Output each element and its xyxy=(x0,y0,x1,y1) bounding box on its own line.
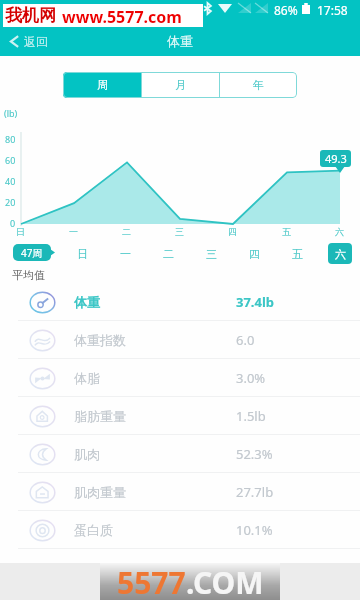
staticText: 27.7lb xyxy=(236,483,274,501)
staticText: 五 xyxy=(282,226,291,237)
staticText: 二 xyxy=(122,226,131,237)
staticText: 肌肉重量 xyxy=(74,484,126,500)
staticText: 六 xyxy=(335,226,344,237)
button[interactable]: 肌肉 xyxy=(0,435,360,473)
button[interactable]: 二 xyxy=(158,243,178,264)
staticText: 5577 xyxy=(117,562,186,599)
staticText: 蛋白质 xyxy=(74,522,113,538)
button[interactable]: 体脂 xyxy=(0,359,360,397)
staticText: 我机网 xyxy=(5,5,56,26)
staticText: 平均值 xyxy=(12,268,45,282)
staticText: 月 xyxy=(175,78,186,92)
staticText: 日 xyxy=(16,226,25,237)
button[interactable]: 周 xyxy=(63,72,141,98)
staticText: 日 xyxy=(77,247,88,261)
button[interactable]: 五 xyxy=(287,243,307,264)
staticText: 47周 xyxy=(21,246,43,260)
button[interactable]: 一 xyxy=(115,243,135,264)
staticText: 体重 xyxy=(74,294,100,310)
staticText: 四 xyxy=(228,226,237,237)
staticText: 6.0 xyxy=(236,331,255,349)
staticText: 体重 xyxy=(167,33,193,49)
staticText: 体脂 xyxy=(74,370,100,386)
button[interactable]: 日 xyxy=(72,243,92,264)
staticText: 10.1% xyxy=(236,521,273,539)
staticText: 肌肉 xyxy=(74,446,100,462)
staticText: 一 xyxy=(120,247,131,261)
staticText: 37.4lb xyxy=(236,293,275,311)
button[interactable]: 体重 xyxy=(0,283,360,321)
button[interactable]: 体重指数 xyxy=(0,321,360,359)
staticText: .COM xyxy=(186,562,264,599)
staticText: 体重指数 xyxy=(74,332,126,348)
button[interactable]: 47周 xyxy=(13,244,51,261)
button[interactable]: 蛋白质 xyxy=(0,511,360,549)
button[interactable]: 四 xyxy=(244,243,264,264)
staticText: 三 xyxy=(175,226,184,237)
staticText: 17:58 xyxy=(317,2,348,18)
button[interactable]: 三 xyxy=(201,243,221,264)
staticText: 20 xyxy=(5,196,16,208)
button[interactable]: 肌肉重量 xyxy=(0,473,360,511)
staticText: 二 xyxy=(163,247,174,261)
staticText: 3.0% xyxy=(236,369,266,387)
staticText: 49.3 xyxy=(325,151,347,166)
staticText: 年 xyxy=(253,78,264,92)
staticText: 返回 xyxy=(24,34,48,49)
staticText: 1.5lb xyxy=(236,407,266,425)
button[interactable]: 返回 xyxy=(8,27,48,55)
button[interactable]: 脂肪重量 xyxy=(0,397,360,435)
staticText: 52.3% xyxy=(236,445,273,463)
staticText: 60 xyxy=(5,154,16,166)
button[interactable]: 六 xyxy=(328,243,352,264)
staticText: www.5577.com xyxy=(62,6,182,28)
staticText: 一 xyxy=(69,226,78,237)
staticText: (lb) xyxy=(4,107,18,119)
staticText: 40 xyxy=(5,175,16,187)
staticText: 五 xyxy=(292,247,303,261)
staticText: 86% xyxy=(274,2,298,18)
staticText: 0 xyxy=(10,217,16,229)
button[interactable]: 月 xyxy=(142,72,219,98)
staticText: 三 xyxy=(206,247,217,261)
staticText: 80 xyxy=(5,133,16,145)
staticText: 四 xyxy=(249,247,260,261)
staticText: 脂肪重量 xyxy=(74,408,126,424)
staticText: 周 xyxy=(97,78,108,92)
button[interactable]: 年 xyxy=(220,72,297,98)
staticText: 六 xyxy=(335,247,346,261)
